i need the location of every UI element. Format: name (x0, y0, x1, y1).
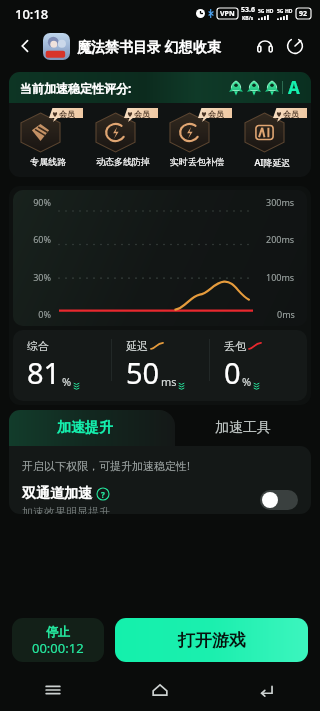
staticText: 53.6 (241, 5, 255, 15)
staticText: 动态多线防掉 (96, 156, 150, 167)
staticText: HD (285, 8, 293, 15)
staticText: 92 (299, 9, 308, 19)
button[interactable]: Back (10, 31, 40, 61)
staticText: 30% (25, 271, 51, 283)
staticText: A (288, 76, 300, 99)
button[interactable]: Back (213, 669, 320, 711)
staticText: 加速工具 (215, 419, 271, 437)
staticText: 魔法禁书目录 幻想收束 (77, 37, 250, 56)
button[interactable]: 加速工具 (175, 410, 311, 446)
staticText: 开启以下权限，可提升加速稳定性! (22, 458, 190, 473)
staticText: VPN (220, 9, 235, 19)
button[interactable]: 加速提升 (9, 410, 175, 446)
button[interactable]: Headphones (250, 31, 280, 61)
staticText: 加速提升 (57, 419, 113, 437)
staticText: 100ms (266, 271, 295, 283)
staticText: ms (161, 374, 177, 389)
button[interactable]: Power (280, 31, 310, 61)
staticText: 当前加速稳定性评分: (20, 80, 132, 96)
staticText: 丢包 (224, 339, 246, 353)
staticText: 60% (25, 233, 51, 245)
staticText: 延迟 (126, 339, 148, 353)
staticText: 会员 (134, 109, 150, 119)
button[interactable] (96, 113, 135, 152)
staticText: 50 (126, 353, 160, 392)
staticText: ? (101, 489, 105, 500)
staticText: 会员 (208, 109, 224, 119)
staticText: 10:18 (15, 5, 49, 23)
staticText: 实时丢包补偿 (170, 156, 224, 167)
staticText: % (62, 374, 72, 389)
staticText: 0% (25, 308, 51, 320)
staticText: 停止 (46, 624, 70, 639)
staticText: 综合 (27, 339, 49, 353)
staticText: 双通道加速 (22, 485, 92, 503)
staticText: 专属线路 (30, 156, 66, 167)
button[interactable] (170, 113, 209, 152)
staticText: AI降延迟 (254, 156, 291, 168)
staticText: % (242, 374, 252, 389)
staticText: 会员 (283, 109, 299, 119)
staticText: 0ms (277, 308, 295, 320)
staticText: 打开游戏 (178, 630, 246, 651)
staticText: 0 (224, 353, 241, 392)
staticText: 加速效果明显提升 (22, 505, 110, 514)
button[interactable]: Recents (0, 669, 106, 711)
staticText: 会员 (59, 109, 75, 119)
staticText: 5G (277, 8, 284, 15)
staticText: 00:00:12 (32, 639, 84, 657)
button[interactable]: 打开游戏 (115, 618, 308, 662)
button[interactable]: 双通道加速 (22, 485, 298, 514)
staticText: 81 (27, 353, 61, 392)
button[interactable]: 停止 (12, 618, 104, 662)
button[interactable] (21, 113, 60, 152)
button[interactable]: Toggle dual channel (260, 490, 298, 510)
staticText: 200ms (266, 233, 295, 245)
button[interactable] (245, 113, 284, 152)
staticText: HD (266, 8, 274, 15)
staticText: 90% (25, 196, 51, 208)
staticText: 5G (258, 8, 265, 15)
staticText: KB/s (242, 15, 254, 22)
button[interactable]: Home (106, 669, 213, 711)
staticText: 300ms (266, 196, 295, 208)
